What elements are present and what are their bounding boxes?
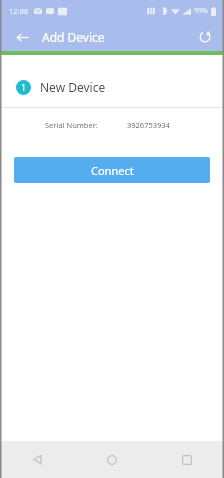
staticText: New Device bbox=[40, 79, 106, 95]
staticText: 3926753934 bbox=[127, 120, 170, 130]
button[interactable]: Recent apps bbox=[149, 441, 224, 478]
staticText: Add Device bbox=[42, 29, 105, 45]
button[interactable]: Back bbox=[10, 25, 34, 49]
staticText: 12:08 bbox=[9, 6, 29, 16]
button[interactable]: Refresh bbox=[194, 26, 216, 48]
button[interactable]: Connect bbox=[14, 157, 210, 183]
staticText: 1 bbox=[21, 82, 26, 93]
staticText: Serial Number: bbox=[45, 120, 98, 130]
staticText: 99% bbox=[194, 6, 208, 16]
button[interactable]: Back bbox=[0, 441, 74, 478]
staticText: Connect bbox=[91, 163, 134, 178]
button[interactable]: Home bbox=[74, 441, 149, 478]
button[interactable]: 1 bbox=[0, 72, 224, 102]
